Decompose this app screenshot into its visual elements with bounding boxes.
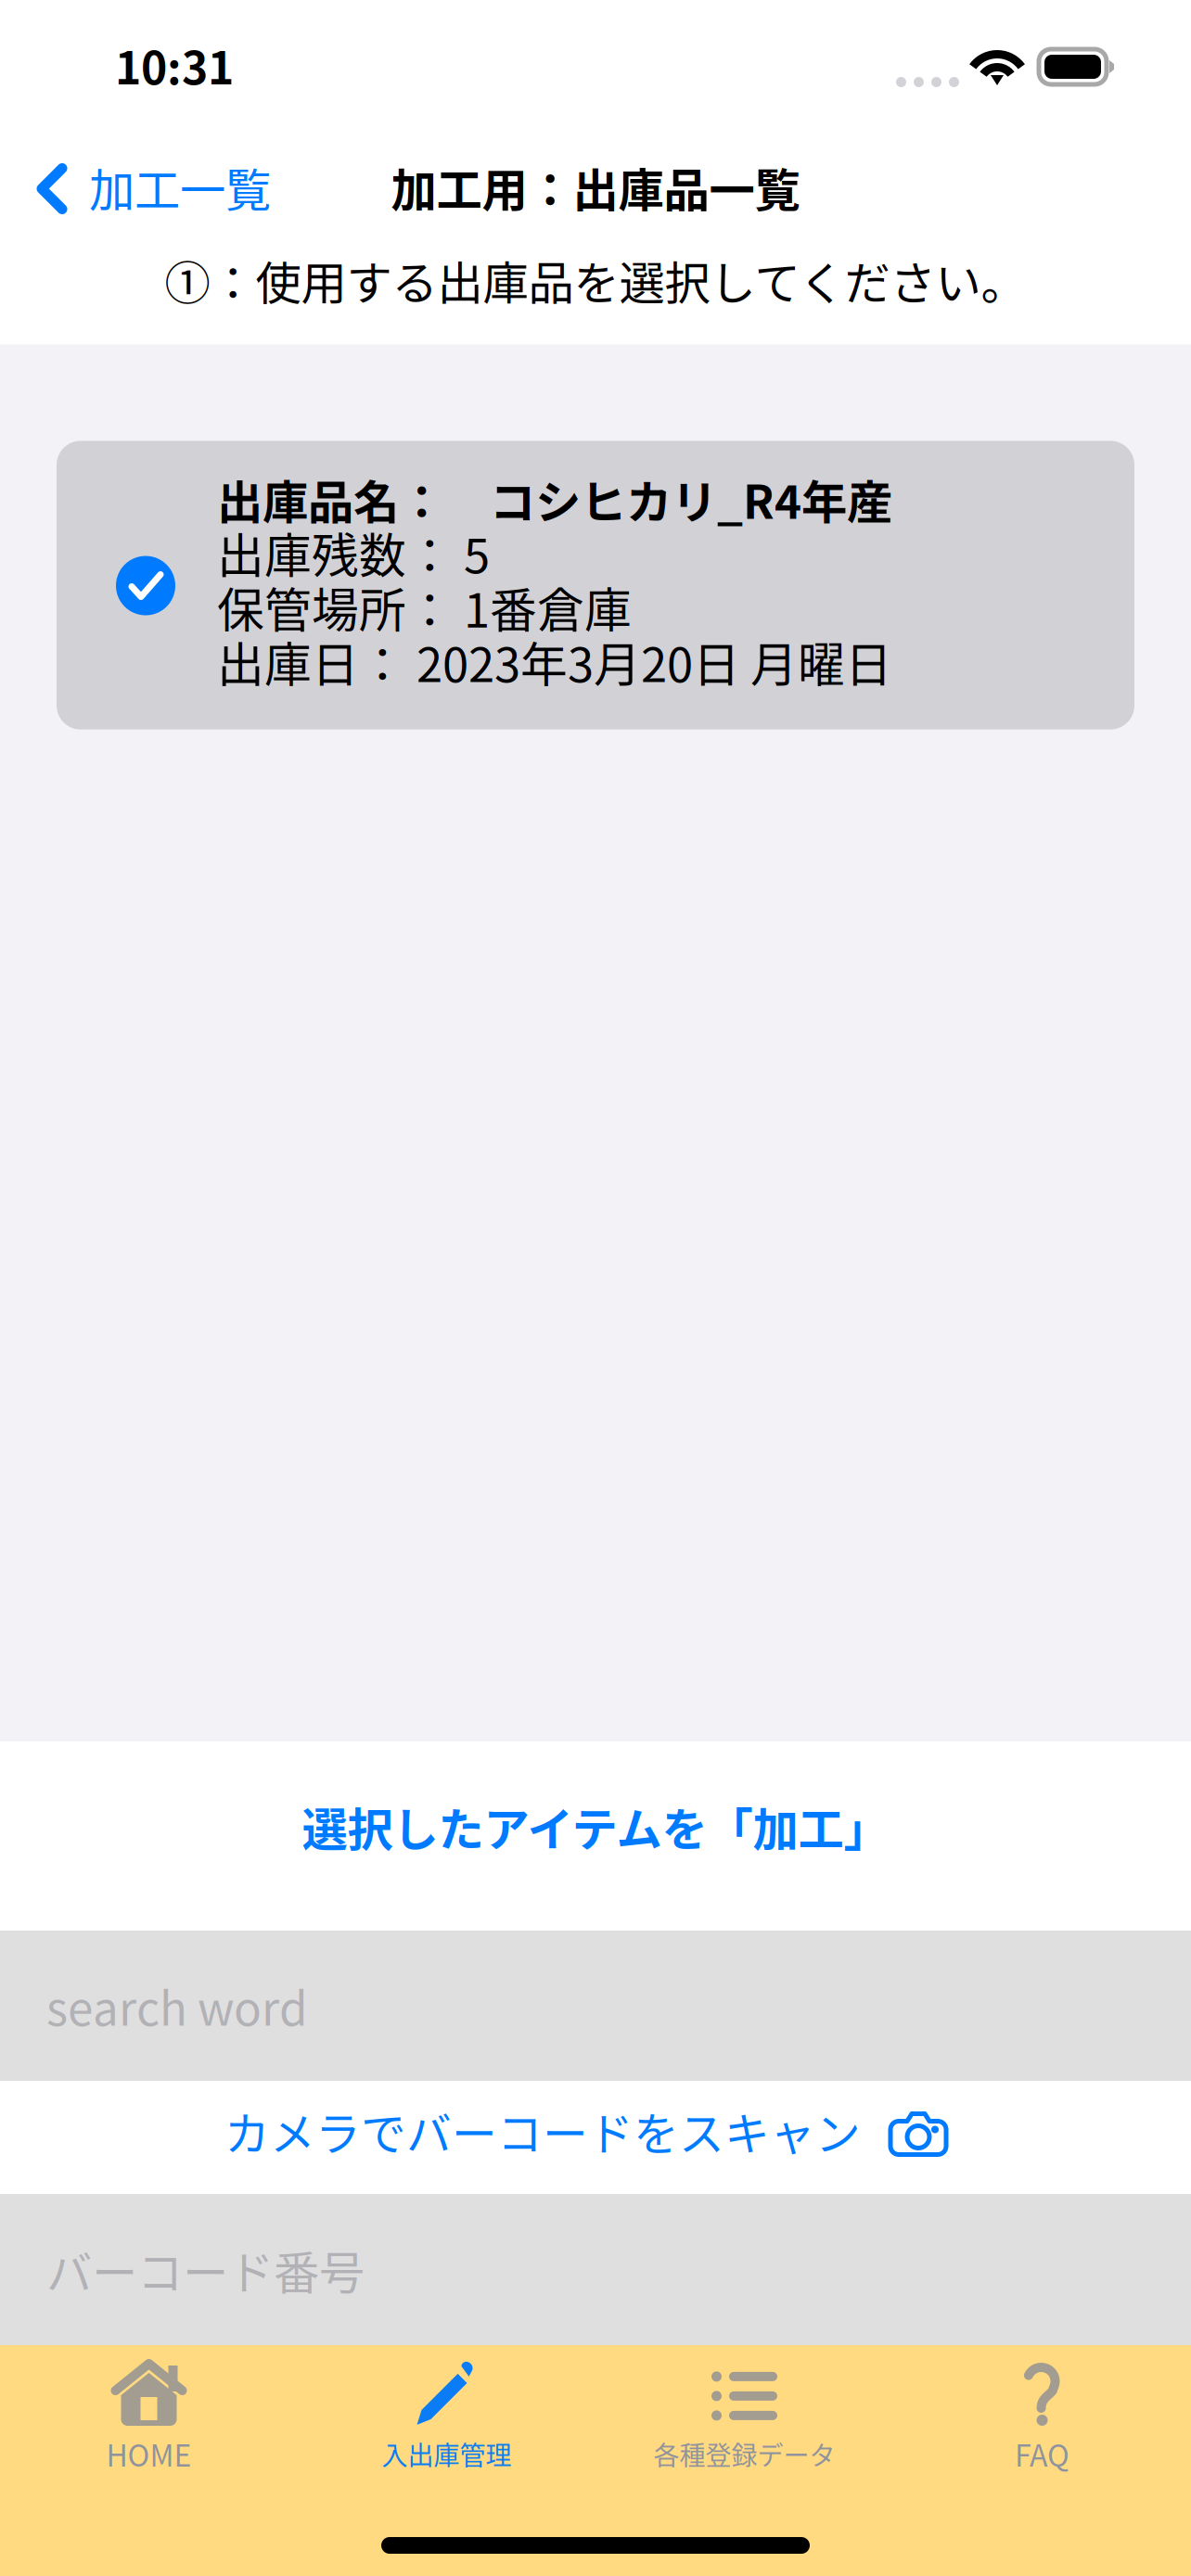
staticText: ①：使用する出庫品を選択してください。 — [165, 247, 1026, 313]
staticText: 選択したアイテムを「加工」 — [302, 1800, 889, 1853]
button[interactable]: FAQ — [893, 2345, 1191, 2475]
button[interactable]: HOME — [0, 2345, 298, 2475]
staticText: 加工一覧 — [89, 154, 271, 220]
staticText: 保管場所： 1番倉庫 — [217, 580, 632, 634]
button[interactable]: 加工一覧 — [0, 145, 286, 229]
staticText: 出庫品名： コシヒカリ_R4年産 — [217, 472, 892, 525]
staticText: 各種登録データ — [653, 2435, 835, 2473]
button[interactable]: 出庫品名： コシヒカリ_R4年産 — [57, 441, 1134, 729]
staticText: カメラでバーコードをスキャン — [224, 2105, 861, 2157]
staticText: FAQ — [1015, 2432, 1069, 2475]
staticText: 出庫残数： 5 — [217, 525, 490, 580]
staticText: HOME — [106, 2432, 192, 2475]
staticText: 出庫日： 2023年3月20日 月曜日 — [217, 634, 892, 689]
button[interactable]: カメラでバーコードをスキャン — [0, 2081, 1191, 2194]
staticText: 10:31 — [115, 39, 234, 91]
button[interactable]: search word — [0, 1931, 1191, 2081]
button[interactable]: 選択したアイテムを「加工」 — [0, 1741, 1191, 1931]
button[interactable]: バーコード番号 — [0, 2194, 1191, 2345]
staticText: 入出庫管理 — [382, 2435, 512, 2473]
button[interactable]: 各種登録データ — [595, 2348, 893, 2473]
staticText: バーコード番号 — [46, 2236, 365, 2303]
button[interactable]: 入出庫管理 — [298, 2348, 595, 2473]
staticText: search word — [46, 1973, 308, 2039]
staticText: 加工用：出庫品一覧 — [391, 154, 800, 220]
